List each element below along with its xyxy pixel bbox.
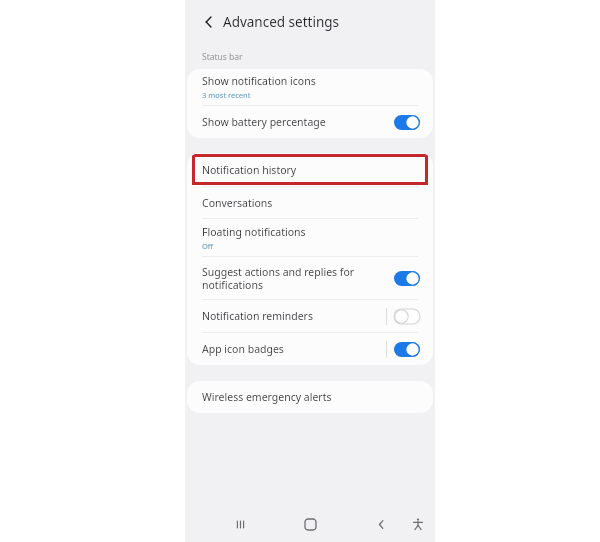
button[interactable]: Conversations [187,187,433,218]
staticText: Suggest actions and replies for notifica… [202,265,394,292]
staticText: Wireless emergency alerts [202,390,332,404]
staticText: Floating notifications [202,225,306,239]
staticText: Advanced settings [223,13,340,31]
staticText: Status bar [202,51,243,63]
button[interactable]: Floating notifications [187,219,433,256]
staticText: Show battery percentage [202,115,326,129]
staticText: Notification history [202,163,297,177]
button[interactable]: Back [368,511,394,537]
button[interactable]: Notification reminders [187,300,433,332]
staticText: App icon badges [202,342,284,356]
button[interactable]: Back [195,8,223,36]
staticText: Conversations [202,196,273,210]
button[interactable]: App icon badges [187,333,433,365]
staticText: Notification reminders [202,309,313,323]
button[interactable]: Show notification icons [187,69,433,105]
button[interactable]: Accessibility [405,511,431,537]
button[interactable]: Suggest actions and replies for notifica… [187,257,433,299]
button[interactable]: Notification history [187,153,433,186]
staticText: Off [202,241,214,251]
staticText: 3 most recent [202,90,251,100]
button[interactable]: Show battery percentage [187,106,433,138]
button[interactable]: Wireless emergency alerts [187,381,433,413]
button[interactable]: Home [297,511,323,537]
button[interactable]: Recent apps [227,511,253,537]
staticText: Show notification icons [202,74,316,88]
